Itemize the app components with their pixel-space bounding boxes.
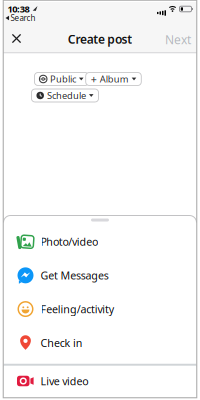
staticText: Search [10, 13, 35, 23]
button[interactable]: Live video [3, 365, 196, 396]
staticText: Public [50, 73, 76, 85]
button[interactable]: Check in [3, 326, 196, 360]
button[interactable]: Schedule [31, 89, 99, 102]
staticText: Live video [40, 374, 88, 388]
button[interactable]: Public [34, 72, 89, 85]
staticText: Album [100, 73, 129, 85]
staticText: Photo/video [40, 235, 98, 249]
staticText: Feeling/activity [40, 302, 114, 316]
staticText: Check in [40, 336, 83, 350]
staticText: Schedule [47, 89, 86, 102]
staticText: Get Messages [40, 268, 109, 282]
staticText: 10:38 [7, 3, 30, 15]
button[interactable]: Close [12, 34, 21, 43]
staticText: + [91, 72, 97, 86]
button[interactable]: + [86, 72, 141, 85]
button[interactable]: Feeling/activity [3, 292, 196, 326]
staticText: Create post [68, 31, 132, 47]
button[interactable]: Photo/video [3, 225, 196, 258]
button[interactable]: Get Messages [3, 258, 196, 292]
staticText: Next [165, 31, 191, 47]
button[interactable]: Next [165, 31, 191, 47]
